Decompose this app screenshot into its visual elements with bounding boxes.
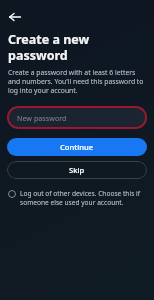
staticText: Continue: [60, 142, 94, 152]
button[interactable]: Continue: [7, 138, 147, 156]
staticText: Create a password with at least 6 letter…: [8, 68, 144, 95]
button[interactable]: Log out of other devices. Choose this if…: [8, 189, 146, 207]
button[interactable]: New password: [7, 106, 147, 129]
staticText: Create a new password: [8, 31, 146, 63]
staticText: Skip: [69, 165, 85, 175]
staticText: New password: [17, 113, 67, 123]
button[interactable]: Back: [4, 6, 26, 28]
staticText: Log out of other devices. Choose this if…: [20, 189, 146, 207]
button[interactable]: Skip: [7, 161, 147, 179]
